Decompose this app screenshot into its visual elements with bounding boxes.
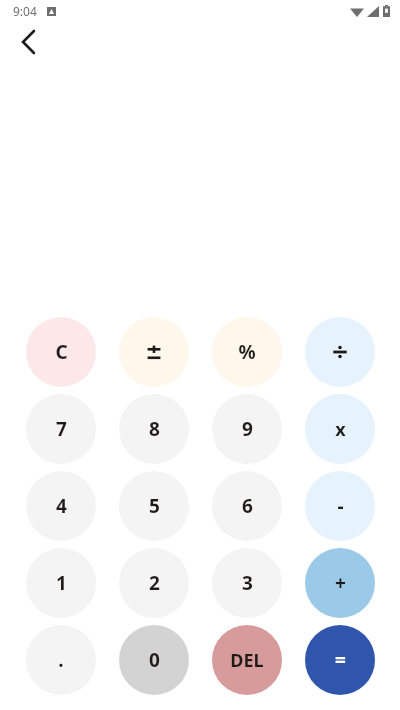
staticText: 4 — [56, 493, 67, 519]
staticText: 7 — [56, 416, 67, 442]
button[interactable]: 5 — [119, 471, 189, 541]
button[interactable]: . — [26, 625, 96, 695]
staticText: % — [238, 339, 256, 365]
staticText: 1 — [56, 570, 67, 596]
button[interactable] — [305, 317, 375, 387]
staticText: + — [335, 570, 346, 596]
button[interactable]: DEL — [212, 625, 282, 695]
button[interactable]: - — [305, 471, 375, 541]
staticText: 0 — [149, 647, 160, 673]
button[interactable]: 9 — [212, 394, 282, 464]
staticText: x — [335, 417, 346, 442]
button[interactable]: C — [26, 317, 96, 387]
button[interactable]: 0 — [119, 625, 189, 695]
button[interactable]: 6 — [212, 471, 282, 541]
button[interactable] — [119, 317, 189, 387]
staticText: 8 — [149, 416, 160, 442]
staticText: 6 — [242, 493, 253, 519]
button[interactable]: Back — [8, 22, 48, 62]
button[interactable]: x — [305, 394, 375, 464]
button[interactable]: 7 — [26, 394, 96, 464]
staticText: 3 — [242, 570, 253, 596]
staticText: . — [58, 647, 64, 673]
staticText: 9 — [242, 416, 253, 442]
button[interactable]: 3 — [212, 548, 282, 618]
staticText: 5 — [149, 493, 160, 519]
staticText: DEL — [230, 648, 264, 673]
button[interactable]: 4 — [26, 471, 96, 541]
button[interactable]: 2 — [119, 548, 189, 618]
button[interactable]: 1 — [26, 548, 96, 618]
staticText: = — [335, 647, 346, 673]
staticText: 2 — [149, 570, 160, 596]
staticText: C — [55, 339, 68, 365]
button[interactable]: 8 — [119, 394, 189, 464]
button[interactable]: % — [212, 317, 282, 387]
staticText: 9:04 — [13, 3, 37, 19]
button[interactable]: + — [305, 548, 375, 618]
staticText: - — [337, 493, 344, 519]
button[interactable]: = — [305, 625, 375, 695]
